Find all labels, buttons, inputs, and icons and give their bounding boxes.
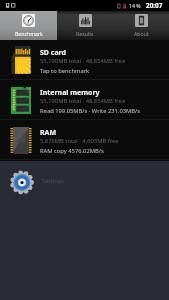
button[interactable]: Settings [0, 161, 169, 203]
staticText: Settings [42, 177, 65, 185]
button[interactable]: SD card [0, 40, 169, 80]
button[interactable]: About [113, 11, 169, 40]
staticText: 55,190MB total · 48,854MB free [40, 57, 126, 65]
staticText: 14 % [129, 2, 141, 9]
staticText: Results [76, 30, 94, 37]
button[interactable]: Internal memory [0, 80, 169, 120]
staticText: Tap to benchmark [40, 67, 90, 75]
staticText: 20:07 [146, 1, 163, 10]
staticText: Internal memory [40, 88, 100, 98]
staticText: About [134, 30, 149, 37]
staticText: Read 199.05MB/s · Write 231.03MB/s [40, 107, 141, 115]
staticText: RAM [40, 128, 57, 138]
staticText: SD card [40, 48, 67, 58]
button[interactable]: Benchmark [0, 11, 57, 40]
staticText: 55,190MB total · 48,854MB free [40, 97, 126, 105]
button[interactable]: RAM [0, 120, 169, 160]
staticText: Benchmark [15, 30, 43, 37]
button[interactable]: Results [57, 11, 113, 40]
staticText: 5,876MB total · 4,603MB free [40, 137, 119, 145]
staticText: RAM copy 4576.02MB/s [40, 147, 104, 155]
